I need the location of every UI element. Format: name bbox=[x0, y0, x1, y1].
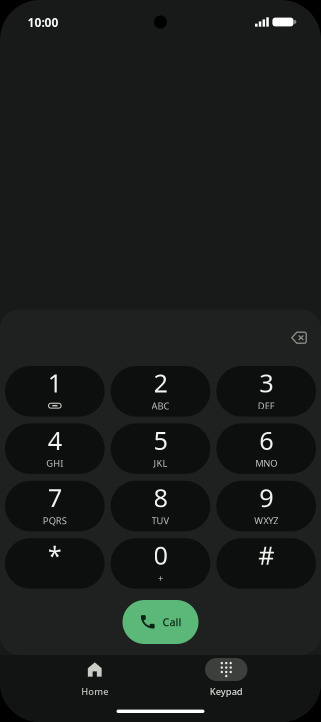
button[interactable]: 0 bbox=[111, 538, 210, 589]
button[interactable]: Home bbox=[29, 658, 160, 698]
button[interactable]: # bbox=[216, 538, 316, 589]
staticText: WXYZ bbox=[254, 514, 278, 527]
staticText: 1 bbox=[48, 366, 62, 399]
staticText: + bbox=[158, 572, 163, 584]
staticText: Call bbox=[162, 615, 181, 629]
button[interactable]: 3 bbox=[216, 366, 316, 416]
button[interactable]: Call bbox=[122, 600, 198, 644]
staticText: ABC bbox=[151, 400, 169, 412]
staticText: # bbox=[258, 538, 274, 572]
button[interactable]: 7 bbox=[5, 481, 105, 531]
staticText: TUV bbox=[151, 514, 169, 527]
staticText: 2 bbox=[153, 366, 167, 399]
staticText: GHI bbox=[46, 457, 63, 469]
staticText: 0 bbox=[153, 538, 167, 572]
staticText: 4 bbox=[48, 423, 62, 457]
button[interactable]: 4 bbox=[5, 423, 105, 474]
staticText: * bbox=[48, 538, 62, 572]
staticText: 3 bbox=[259, 366, 273, 399]
staticText: Home bbox=[81, 685, 108, 698]
button[interactable]: 8 bbox=[111, 481, 210, 531]
staticText: Keypad bbox=[210, 685, 243, 698]
staticText: 10:00 bbox=[27, 14, 58, 30]
button[interactable]: 6 bbox=[216, 423, 316, 474]
staticText: 5 bbox=[153, 423, 167, 457]
staticText: 6 bbox=[259, 423, 273, 457]
button[interactable]: Delete bbox=[277, 316, 321, 360]
button[interactable]: 2 bbox=[111, 366, 210, 416]
staticText: 7 bbox=[48, 481, 62, 514]
staticText: 8 bbox=[153, 481, 167, 514]
staticText: JKL bbox=[153, 457, 167, 469]
staticText: DEF bbox=[258, 400, 275, 412]
button[interactable]: Keypad bbox=[160, 658, 292, 698]
staticText: PQRS bbox=[43, 514, 67, 527]
button[interactable]: * bbox=[5, 538, 105, 589]
staticText: 9 bbox=[259, 481, 273, 514]
staticText: MNO bbox=[255, 457, 277, 469]
button[interactable]: 1 bbox=[5, 366, 105, 416]
button[interactable]: 5 bbox=[111, 423, 210, 474]
button[interactable]: 9 bbox=[216, 481, 316, 531]
